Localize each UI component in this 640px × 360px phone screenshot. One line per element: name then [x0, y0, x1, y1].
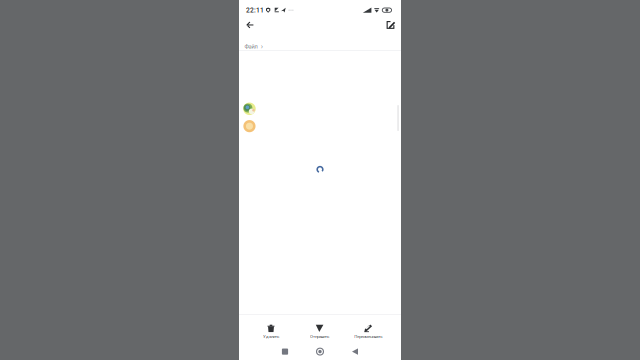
staticText: ›: [261, 42, 263, 51]
button[interactable]: Recent apps: [267, 345, 302, 359]
button[interactable]: Удалить: [247, 315, 295, 345]
staticText: Файл: [244, 43, 257, 50]
staticText: 22:11: [246, 6, 264, 14]
button[interactable]: Back: [337, 345, 372, 359]
button[interactable]: Файл: [239, 35, 270, 51]
button[interactable]: Отправить: [295, 315, 344, 345]
staticText: Отправить: [310, 334, 329, 339]
button[interactable]: Compose: [380, 16, 401, 34]
button[interactable]: Home: [302, 345, 337, 359]
staticText: Переименовать: [354, 334, 382, 339]
button[interactable]: Переименовать: [344, 315, 392, 345]
button[interactable]: Back: [239, 16, 260, 34]
staticText: Удалить: [263, 334, 279, 339]
